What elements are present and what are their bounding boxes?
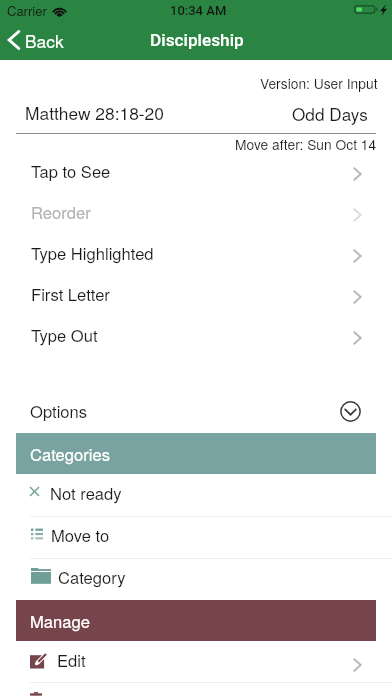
button[interactable]: Edit — [0, 641, 392, 683]
button[interactable]: Type Out — [0, 314, 392, 355]
staticText: Manage — [30, 609, 90, 633]
staticText: Type Out — [31, 323, 98, 347]
button[interactable]: Delete — [0, 682, 392, 696]
button[interactable]: Tap to See — [0, 150, 392, 191]
staticText: Category — [58, 565, 126, 589]
staticText: Move to — [51, 523, 110, 547]
staticText: Back — [25, 28, 64, 53]
button[interactable]: Manage — [16, 600, 376, 641]
staticText: Carrier — [7, 1, 47, 20]
staticText: Edit — [57, 648, 86, 672]
staticText: First Letter — [31, 282, 110, 306]
staticText: Categories — [30, 442, 110, 466]
staticText: Tap to See — [31, 159, 111, 183]
staticText: 10:34 AM — [170, 3, 227, 18]
button[interactable]: Type Highlighted — [0, 232, 392, 273]
staticText: Not ready — [50, 481, 122, 505]
button[interactable]: Reorder — [0, 191, 392, 232]
button[interactable]: Categories — [16, 433, 376, 474]
other: Expand options — [340, 401, 361, 422]
button[interactable]: Category — [0, 558, 392, 600]
staticText: Reorder — [31, 200, 91, 224]
staticText: Type Highlighted — [31, 241, 154, 265]
button[interactable]: Move to — [0, 516, 392, 558]
staticText: Options — [30, 399, 88, 423]
staticText: Version: User Input — [260, 73, 378, 93]
button[interactable]: First Letter — [0, 273, 392, 314]
button[interactable]: Options — [0, 390, 392, 431]
staticText: Move after: Sun Oct 14 — [235, 134, 377, 154]
staticText: Matthew 28:18-20 — [25, 100, 164, 125]
staticText: Discipleship — [150, 30, 244, 50]
staticText: Odd Days — [292, 101, 368, 126]
button[interactable]: Not ready — [0, 474, 392, 516]
button[interactable]: Back — [0, 22, 74, 59]
